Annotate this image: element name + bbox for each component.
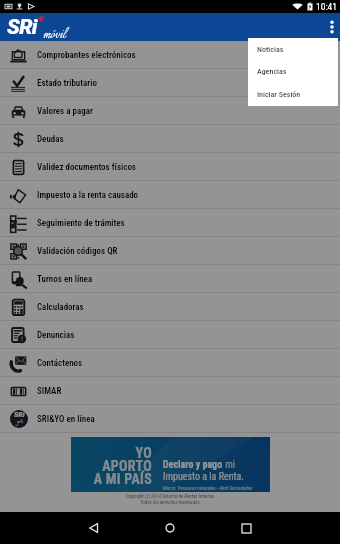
staticText: 10:41: [316, 1, 337, 12]
staticText: Comprobantes electrónicos: [37, 50, 136, 61]
button[interactable]: YO APORTO A MI PAÍS: [71, 437, 270, 492]
staticText: Iniciar Sesión: [257, 90, 301, 99]
staticText: Denuncias: [37, 330, 75, 341]
button[interactable]: Atrás: [79, 513, 109, 543]
staticText: Contáctenos: [37, 358, 83, 369]
staticText: Impuesto a la renta causado: [37, 190, 139, 201]
staticText: SIMAR: [37, 386, 62, 397]
staticText: Agencias: [257, 67, 287, 76]
staticText: Deudas: [37, 134, 64, 145]
button[interactable]: Estado tributario: [0, 69, 340, 97]
button[interactable]: SRi: [0, 405, 340, 433]
button[interactable]: Turnos en línea: [0, 265, 340, 293]
staticText: móvil: [43, 25, 66, 45]
staticText: YO APORTO A MI PAÍS: [71, 445, 152, 488]
staticText: Turnos en línea: [37, 274, 93, 285]
button[interactable]: Validación códigos QR: [0, 237, 340, 265]
button[interactable]: Iniciar Sesión: [248, 83, 338, 106]
button[interactable]: Inicio: [155, 513, 185, 543]
button[interactable]: Calculadoras: [0, 293, 340, 321]
button[interactable]: Comprobantes electrónicos: [0, 41, 340, 69]
button[interactable]: SIMAR: [0, 377, 340, 405]
staticText: Validación códigos QR: [37, 246, 118, 257]
staticText: mi: [223, 459, 236, 471]
staticText: Seguimiento de trámites: [37, 218, 125, 229]
button[interactable]: Impuesto a la renta causado: [0, 181, 340, 209]
button[interactable]: Noticias: [248, 38, 338, 60]
staticText: Copyright (c) 2014 Servicio de Rentas In…: [125, 493, 216, 499]
button[interactable]: Agencias: [248, 60, 338, 83]
button[interactable]: Deudas: [0, 125, 340, 153]
staticText: Estado tributario: [37, 78, 97, 89]
button[interactable]: Contáctenos: [0, 349, 340, 377]
button[interactable]: Seguimiento de trámites: [0, 209, 340, 237]
staticText: SRI&YO en línea: [37, 414, 95, 425]
staticText: SRi: [7, 15, 37, 40]
staticText: Validez documentos físicos: [37, 162, 136, 173]
staticText: Calculadoras: [37, 302, 84, 313]
button[interactable]: Recientes: [231, 513, 261, 543]
button[interactable]: Denuncias: [0, 321, 340, 349]
staticText: Noticias: [257, 45, 284, 54]
staticText: Declaro y pago: [163, 459, 223, 471]
button[interactable]: Validez documentos físicos: [0, 153, 340, 181]
staticText: Marzo: Personas naturales - Abril Socied…: [163, 485, 253, 491]
staticText: Valores a pagar: [37, 106, 93, 117]
button[interactable]: Valores a pagar: [0, 97, 340, 125]
staticText: SRi: [14, 411, 25, 419]
button[interactable]: Más opciones: [324, 13, 340, 41]
staticText: Todos los derechos reservados.: [140, 499, 201, 505]
staticText: Impuesto a la Renta.: [163, 471, 244, 483]
staticText: y/o: [17, 418, 23, 426]
